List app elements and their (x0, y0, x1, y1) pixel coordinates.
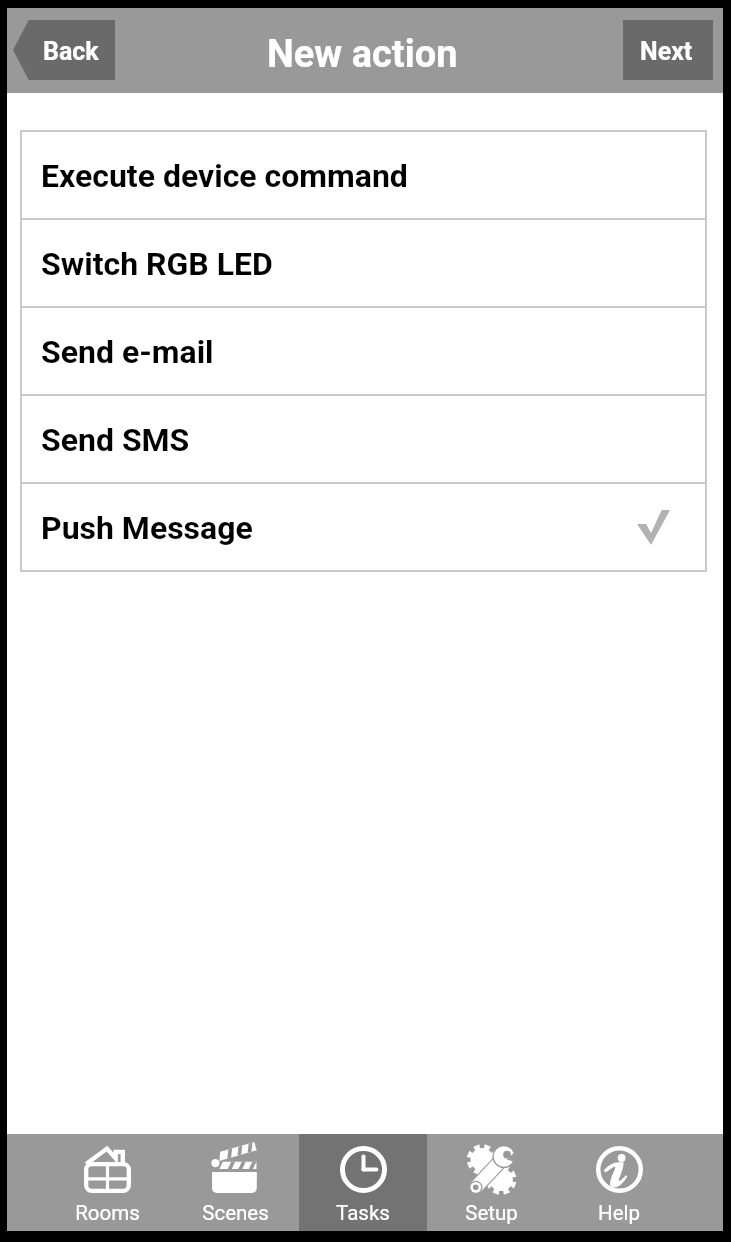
staticText: Tasks (336, 1201, 390, 1225)
staticText: Push Message (41, 509, 637, 547)
button[interactable]: Switch RGB LED (20, 220, 707, 306)
staticText: Scenes (202, 1201, 269, 1225)
button[interactable]: Help (555, 1134, 683, 1231)
staticText: Send SMS (41, 421, 705, 459)
staticText: Execute device command (41, 157, 705, 195)
staticText: Rooms (75, 1201, 140, 1225)
staticText: New action (267, 32, 458, 77)
button[interactable]: Send e-mail (20, 308, 707, 394)
staticText: Help (598, 1201, 640, 1225)
button[interactable]: Next (623, 20, 713, 80)
button[interactable]: Push Message (20, 484, 707, 570)
staticText: Send e-mail (41, 333, 705, 371)
other: Selected (637, 510, 670, 545)
staticText: Next (640, 37, 693, 66)
staticText: Setup (465, 1201, 518, 1225)
button[interactable]: Tasks (299, 1134, 427, 1231)
button[interactable]: Back (13, 20, 115, 80)
button[interactable]: Scenes (171, 1134, 299, 1231)
staticText: Back (43, 37, 99, 66)
button[interactable]: Rooms (43, 1134, 171, 1231)
button[interactable]: Setup (427, 1134, 555, 1231)
staticText: Switch RGB LED (41, 245, 705, 283)
button[interactable]: Execute device command (20, 132, 707, 218)
button[interactable]: Send SMS (20, 396, 707, 482)
